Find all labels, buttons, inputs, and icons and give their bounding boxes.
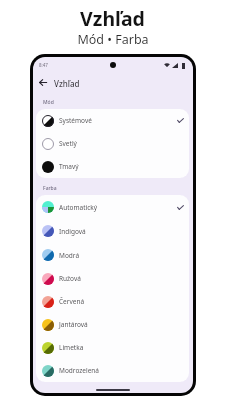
staticText: Tmavý (59, 162, 79, 171)
staticText: Limetka (59, 343, 84, 352)
staticText: Modrozelená (59, 366, 99, 375)
button[interactable]: Svetlý (36, 132, 189, 155)
staticText: Systémové (59, 116, 92, 125)
button[interactable]: Automatický (36, 195, 189, 219)
button[interactable]: Ružová (36, 267, 189, 290)
staticText: Červená (59, 297, 85, 306)
staticText: Vzhľad (80, 5, 145, 32)
button[interactable]: Modrozelená (36, 359, 189, 382)
button[interactable]: Limetka (36, 336, 189, 359)
staticText: Farba (43, 185, 57, 192)
button[interactable]: Späť (36, 75, 50, 89)
staticText: Vzhľad (54, 78, 80, 89)
staticText: Mód (43, 99, 54, 106)
button[interactable]: Červená (36, 290, 189, 313)
button[interactable]: Systémové (36, 109, 189, 132)
staticText: Ružová (59, 274, 81, 283)
staticText: Svetlý (59, 139, 77, 148)
staticText: Modrá (59, 251, 80, 260)
button[interactable]: Modrá (36, 243, 189, 267)
staticText: Indigová (59, 227, 86, 236)
button[interactable]: Indigová (36, 219, 189, 243)
staticText: Jantárová (59, 320, 88, 329)
staticText: Automatický (59, 203, 98, 212)
staticText: 8:47 (39, 62, 48, 68)
staticText: Mód • Farba (77, 31, 149, 48)
button[interactable]: Jantárová (36, 313, 189, 336)
button[interactable]: Tmavý (36, 155, 189, 178)
